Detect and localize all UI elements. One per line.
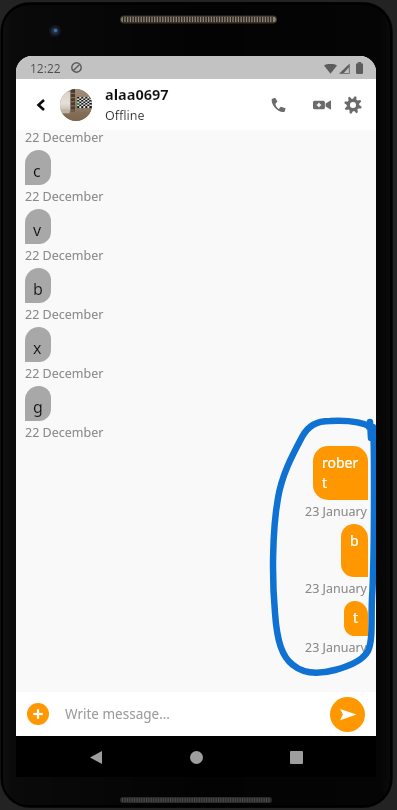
button[interactable]: Back bbox=[78, 739, 114, 775]
staticText: 22 December bbox=[25, 365, 104, 382]
staticText: b bbox=[33, 278, 43, 300]
button[interactable]: Recents bbox=[278, 739, 314, 775]
staticText: 12:22 bbox=[30, 60, 61, 76]
staticText: Write message... bbox=[65, 705, 170, 723]
staticText: 22 December bbox=[25, 129, 104, 146]
staticText: c bbox=[33, 160, 41, 182]
button[interactable]: c bbox=[25, 150, 51, 185]
button[interactable]: Home bbox=[178, 739, 214, 775]
button[interactable]: Video call bbox=[306, 89, 338, 121]
staticText: 22 December bbox=[25, 247, 104, 264]
staticText: Offline bbox=[105, 107, 145, 124]
staticText: b bbox=[350, 531, 359, 550]
button[interactable]: v bbox=[25, 209, 51, 244]
staticText: 23 January bbox=[305, 580, 367, 597]
staticText: alaa0697 bbox=[105, 84, 169, 104]
button[interactable]: Call bbox=[262, 89, 294, 121]
button[interactable]: x bbox=[25, 327, 51, 362]
staticText: 22 December bbox=[25, 188, 104, 205]
button[interactable]: g bbox=[25, 386, 51, 421]
staticText: 22 December bbox=[25, 424, 104, 441]
staticText: 23 January bbox=[305, 639, 367, 656]
staticText: v bbox=[33, 219, 42, 241]
staticText: g bbox=[33, 396, 43, 418]
button[interactable]: Back bbox=[24, 88, 58, 122]
button[interactable]: b bbox=[25, 268, 51, 303]
button[interactable]: Settings bbox=[337, 89, 369, 121]
staticText: 23 January bbox=[305, 503, 367, 520]
button[interactable]: b bbox=[341, 524, 368, 577]
button[interactable]: Send bbox=[330, 697, 365, 732]
staticText: x bbox=[33, 337, 42, 359]
button[interactable]: Attach bbox=[27, 703, 49, 725]
button[interactable]: t bbox=[344, 601, 368, 636]
staticText: 22 December bbox=[25, 306, 104, 323]
button[interactable]: rober t bbox=[313, 446, 368, 500]
staticText: rober t bbox=[322, 453, 359, 492]
staticText: t bbox=[353, 608, 359, 627]
